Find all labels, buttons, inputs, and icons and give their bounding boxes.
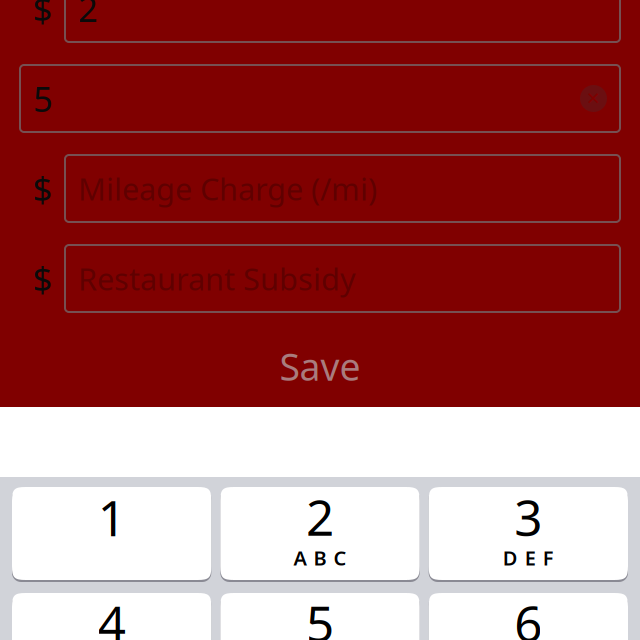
button[interactable]: Mileage Charge (/mi) xyxy=(65,155,620,222)
button[interactable]: 6 xyxy=(429,593,628,640)
button[interactable]: Restaurant Subsidy xyxy=(65,245,620,312)
button[interactable]: 1 xyxy=(12,487,211,580)
staticText: 4 xyxy=(98,590,126,640)
button[interactable]: 2 xyxy=(220,487,420,580)
staticText: 1 xyxy=(98,484,126,550)
staticText: 3 xyxy=(514,484,542,549)
staticText: 2 xyxy=(78,0,98,31)
button[interactable]: 5 xyxy=(220,593,420,640)
staticText: 5 xyxy=(33,75,53,121)
staticText: $ xyxy=(32,165,52,211)
button[interactable]: 5 xyxy=(20,65,620,132)
staticText: 2 xyxy=(306,484,334,549)
button[interactable]: Save xyxy=(0,332,640,400)
staticText: Save xyxy=(279,341,360,391)
button[interactable]: Clear text xyxy=(580,85,607,112)
staticText: 5 xyxy=(306,590,334,640)
staticText: Restaurant Subsidy xyxy=(78,258,356,299)
staticText: A B C xyxy=(293,544,346,571)
staticText: D E F xyxy=(503,544,554,571)
staticText: $ xyxy=(32,0,52,31)
button[interactable]: 3 xyxy=(429,487,628,580)
staticText: $ xyxy=(32,255,52,301)
staticText: 6 xyxy=(514,590,542,640)
staticText: ✕ xyxy=(586,89,601,108)
button[interactable]: 2 xyxy=(65,0,620,42)
staticText: Mileage Charge (/mi) xyxy=(78,168,377,209)
button[interactable]: 4 xyxy=(12,593,211,640)
